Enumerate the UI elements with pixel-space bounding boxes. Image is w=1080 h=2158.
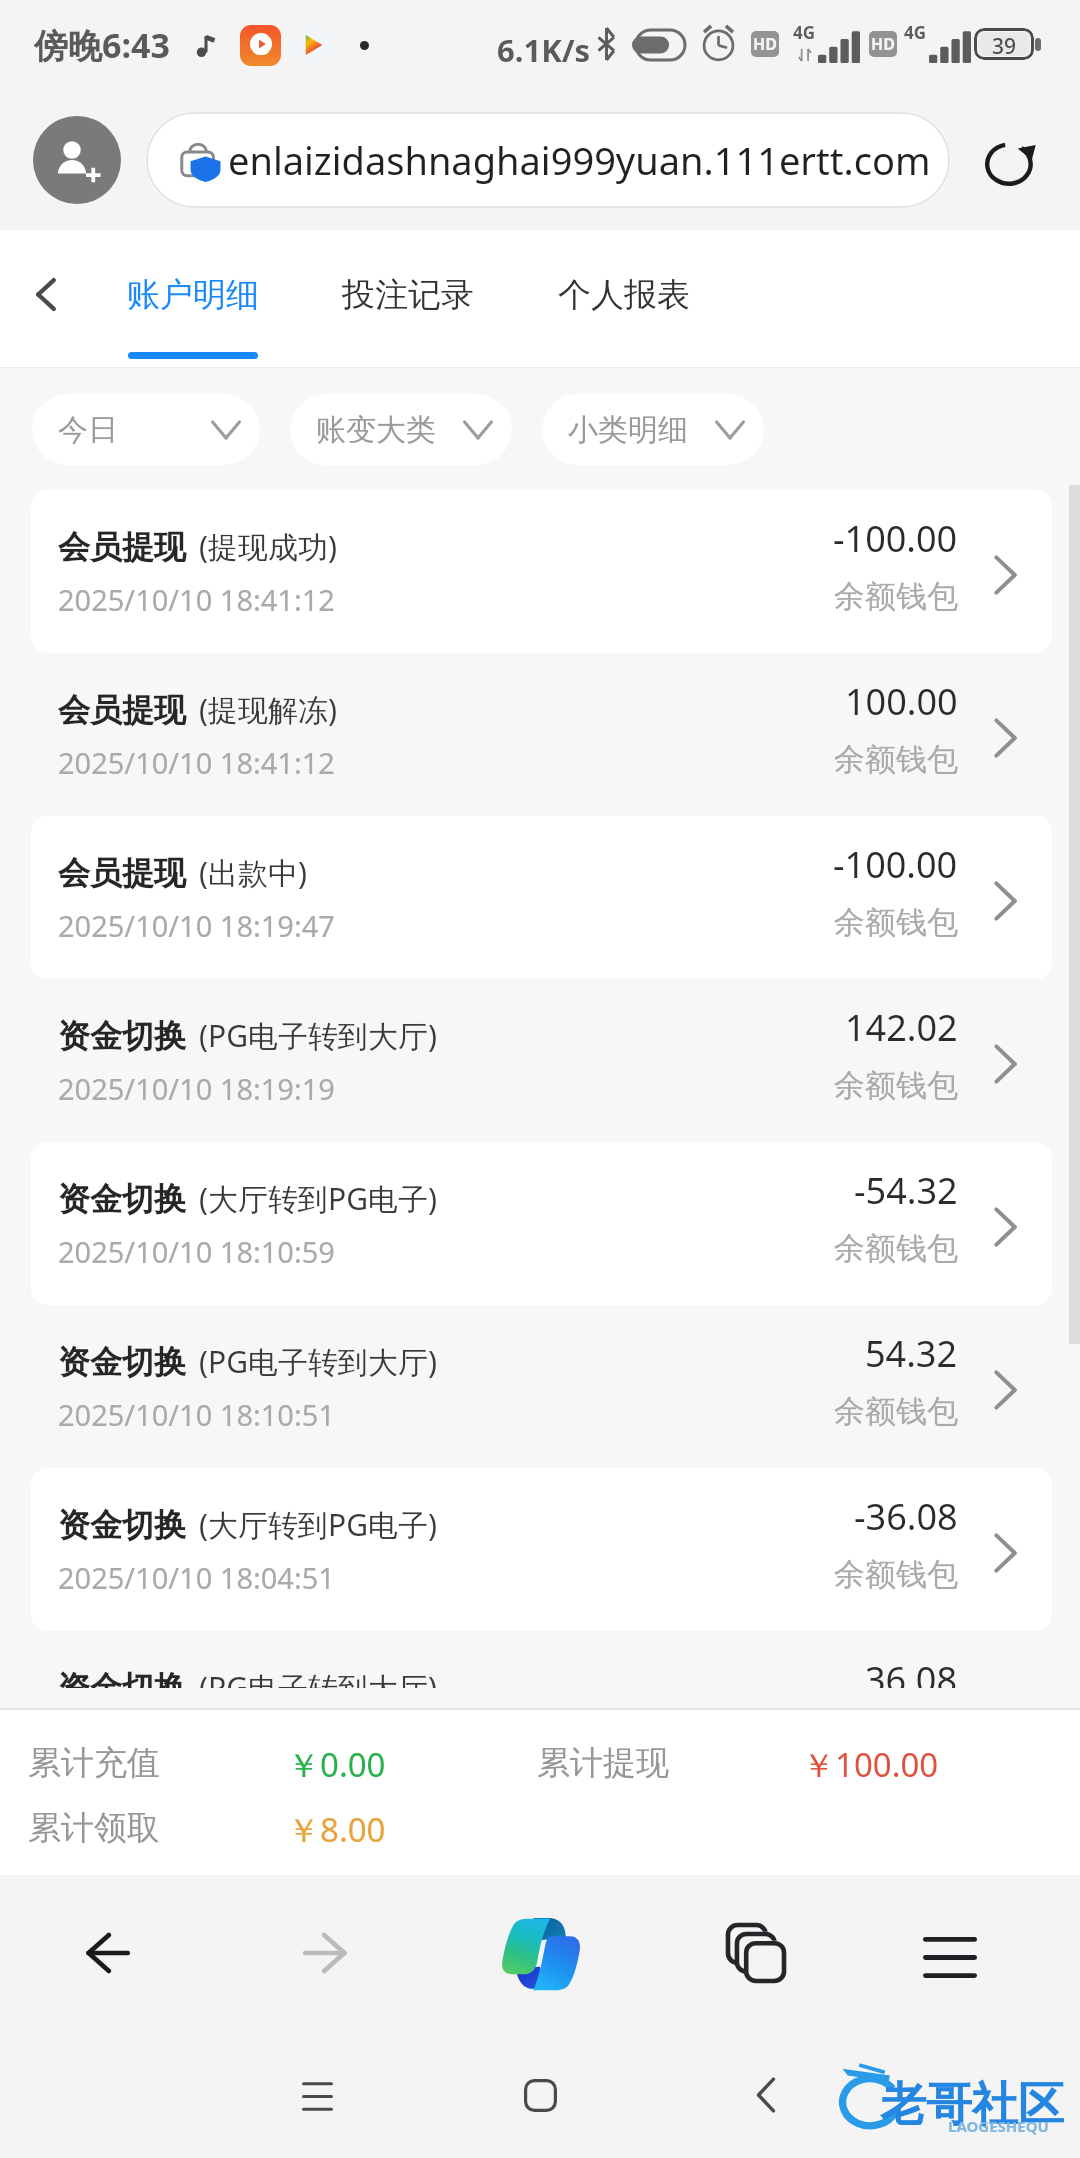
staticText: 投注记录	[342, 274, 474, 316]
button[interactable]: Tabs	[696, 1893, 816, 2013]
button[interactable]: Copilot	[480, 1893, 600, 2013]
staticText: 余额钱包	[834, 1229, 958, 1268]
button[interactable]: 账变大类	[290, 394, 512, 465]
staticText: (提现解冻)	[199, 689, 337, 730]
staticText: 傍晚6:43	[34, 22, 170, 68]
staticText: 39	[992, 32, 1017, 56]
staticText: 余额钱包	[834, 1392, 958, 1431]
staticText: 6.1K/s	[497, 29, 591, 71]
staticText: 老哥社区	[880, 2076, 1064, 2134]
staticText: -100.00	[833, 514, 958, 563]
staticText: HD	[753, 33, 777, 55]
staticText: 余额钱包	[834, 577, 958, 616]
staticText: enlaizidashnaghai999yuan.111ertt.com	[228, 134, 931, 186]
button[interactable]: Back	[720, 2049, 812, 2141]
staticText: 余额钱包	[834, 1555, 958, 1594]
staticText: 小类明细	[568, 411, 688, 449]
staticText: 2025/10/10 18:04:51	[58, 1558, 335, 1597]
button[interactable]: Recents	[271, 2050, 363, 2142]
button[interactable]: 会员提现	[0, 490, 1080, 653]
button[interactable]: 账户明细	[128, 230, 258, 368]
staticText: (PG电子转到大厅)	[199, 1667, 437, 1688]
button[interactable]: Menu	[890, 1897, 1010, 2017]
staticText: 会员提现	[58, 690, 186, 730]
button[interactable]: Reload	[972, 121, 1050, 199]
button[interactable]: 个人报表	[561, 230, 687, 368]
staticText: 资金切换	[58, 1505, 186, 1545]
button[interactable]: 会员提现	[0, 653, 1080, 816]
staticText: 累计提现	[537, 1742, 669, 1784]
staticText: 2025/10/10 18:19:19	[58, 1069, 335, 1108]
staticText: (提现成功)	[199, 526, 337, 567]
staticText: 余额钱包	[834, 740, 958, 779]
button[interactable]: Back	[0, 230, 100, 368]
staticText: 余额钱包	[834, 903, 958, 942]
staticText: HD	[871, 33, 895, 55]
staticText: LAOGESHEQU	[948, 2116, 1049, 2136]
staticText: 4G	[793, 21, 816, 44]
staticText: -100.00	[833, 840, 958, 889]
button[interactable]: Profile	[33, 116, 121, 204]
staticText: (出款中)	[199, 852, 307, 893]
staticText: 账户明细	[127, 274, 259, 316]
staticText: 2025/10/10 18:10:59	[58, 1232, 335, 1271]
button[interactable]: 资金切换	[0, 1142, 1080, 1305]
button[interactable]: 投注记录	[343, 230, 473, 368]
staticText: 2025/10/10 18:41:12	[58, 580, 335, 619]
staticText: 4G	[904, 21, 927, 44]
staticText: ￥8.00	[287, 1807, 386, 1852]
staticText: 资金切换	[58, 1342, 186, 1382]
staticText: 2025/10/10 18:19:47	[58, 906, 335, 945]
button[interactable]: 今日	[32, 394, 260, 465]
staticText: 会员提现	[58, 853, 186, 893]
staticText: 资金切换	[58, 1016, 186, 1056]
button[interactable]: enlaizidashnaghai999yuan.111ertt.com	[146, 112, 950, 208]
staticText: 累计充值	[28, 1742, 160, 1784]
button[interactable]: Home	[494, 2049, 586, 2141]
staticText: 54.32	[865, 1329, 958, 1378]
button[interactable]: Back	[48, 1893, 168, 2013]
staticText: 累计领取	[28, 1807, 160, 1849]
staticText: (大厅转到PG电子)	[199, 1178, 437, 1219]
button[interactable]: 资金切换	[0, 1305, 1080, 1468]
staticText: ￥100.00	[802, 1742, 939, 1787]
staticText: (PG电子转到大厅)	[199, 1015, 437, 1056]
button[interactable]: Forward	[265, 1893, 385, 2013]
staticText: 2025/10/10 18:10:51	[58, 1395, 335, 1434]
button[interactable]: 资金切换	[0, 1631, 1080, 1688]
staticText: 2025/10/10 18:41:12	[58, 743, 335, 782]
staticText: 会员提现	[58, 527, 186, 567]
button[interactable]: 资金切换	[0, 979, 1080, 1142]
staticText: 今日	[58, 411, 118, 449]
staticText: -36.08	[854, 1492, 958, 1541]
button[interactable]: 会员提现	[0, 816, 1080, 979]
staticText: 账变大类	[316, 411, 436, 449]
staticText: ￥0.00	[287, 1742, 386, 1787]
staticText: 142.02	[845, 1003, 958, 1052]
staticText: 100.00	[845, 677, 958, 726]
staticText: (大厅转到PG电子)	[199, 1504, 437, 1545]
button[interactable]: 小类明细	[542, 394, 764, 465]
staticText: 资金切换	[58, 1179, 186, 1219]
staticText: (PG电子转到大厅)	[199, 1341, 437, 1382]
button[interactable]: 资金切换	[0, 1468, 1080, 1631]
staticText: 资金切换	[58, 1668, 186, 1688]
staticText: 36.08	[865, 1655, 958, 1688]
staticText: 个人报表	[558, 274, 690, 316]
staticText: -54.32	[854, 1166, 958, 1215]
staticText: 余额钱包	[834, 1066, 958, 1105]
